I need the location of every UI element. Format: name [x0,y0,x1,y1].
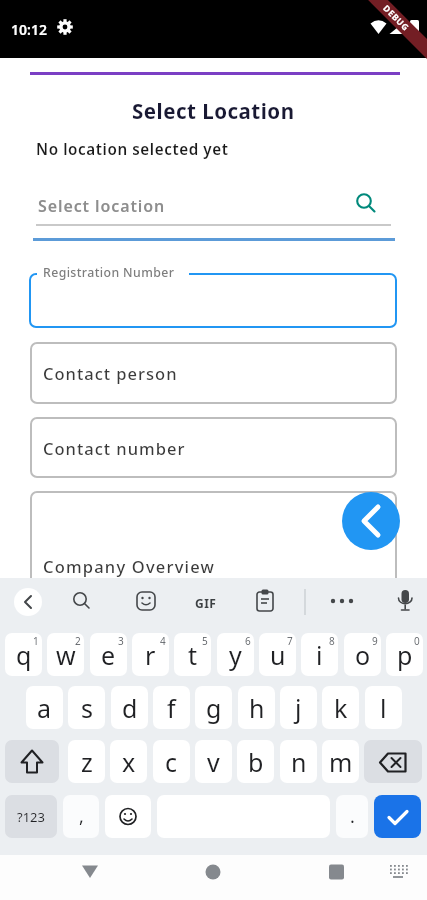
button[interactable] [259,633,296,676]
button[interactable] [132,633,169,676]
button[interactable] [90,633,127,676]
button[interactable] [47,633,84,676]
staticText: v [207,745,220,779]
button[interactable] [5,740,59,783]
button[interactable] [301,633,338,676]
staticText: x [122,745,136,779]
button[interactable]: j [280,686,317,729]
staticText: c [165,745,178,779]
staticText: u [270,638,286,672]
staticText: Contact number [43,437,186,459]
button[interactable]: Company Overview [30,491,397,641]
staticText: Select Location [132,97,295,125]
button[interactable] [217,633,254,676]
staticText: 9 [372,634,378,648]
button[interactable] [386,633,423,676]
staticText: GIF [195,595,217,611]
button[interactable] [342,492,400,550]
button[interactable]: m [322,740,359,783]
staticText: m [329,745,353,779]
staticText: y [229,638,242,672]
staticText: 5 [202,634,208,648]
staticText: Registration Number [43,264,175,281]
staticText: r [145,638,156,672]
staticText: e [101,638,116,672]
staticText: 0 [414,634,420,648]
staticText: , [79,804,84,829]
button[interactable]: , [63,795,99,838]
staticText: h [249,691,265,725]
button[interactable]: x [110,740,147,783]
staticText: b [248,745,264,779]
button[interactable] [364,740,422,783]
button[interactable] [105,795,151,838]
button[interactable]: Contact person [30,342,397,404]
staticText: 10:12 [11,20,47,39]
button[interactable]: c [153,740,190,783]
staticText: 4 [160,634,166,648]
button[interactable] [317,856,357,888]
button[interactable]: b [237,740,274,783]
button[interactable]: Select location [30,188,398,224]
button[interactable] [344,633,381,676]
staticText: d [122,691,138,725]
button[interactable]: Contact number [30,417,397,478]
staticText: l [380,691,387,725]
button[interactable] [374,795,421,838]
staticText: Select location [38,195,166,217]
staticText: f [167,691,176,725]
staticText: 2 [75,634,81,648]
button[interactable]: g [195,686,232,729]
staticText: w [56,638,76,672]
button[interactable]: z [68,740,105,783]
staticText: i [316,638,323,672]
button[interactable] [5,633,42,676]
staticText: z [81,745,93,779]
staticText: 6 [245,634,251,648]
button[interactable]: l [365,686,402,729]
staticText: . [350,804,355,829]
staticText: Contact person [43,362,178,384]
button[interactable]: ?123 [5,795,57,838]
button[interactable] [29,273,397,328]
staticText: n [291,745,307,779]
staticText: o [355,638,371,672]
button[interactable]: s [68,686,105,729]
staticText: t [188,638,198,672]
staticText: p [397,638,413,672]
staticText: DEBUG [380,2,412,34]
button[interactable]: n [280,740,317,783]
staticText: 7 [287,634,293,648]
staticText: 3 [118,634,124,648]
staticText: Company Overview [43,555,216,577]
button[interactable] [193,856,233,888]
button[interactable] [70,856,110,888]
staticText: ?123 [17,808,45,826]
staticText: 8 [329,634,335,648]
button[interactable] [14,588,42,616]
staticText: 1 [33,634,39,648]
staticText: g [206,691,222,725]
staticText: No location selected yet [36,139,229,160]
button[interactable]: v [195,740,232,783]
button[interactable] [174,633,211,676]
button[interactable]: k [322,686,359,729]
button[interactable]: a [26,686,63,729]
button[interactable]: . [336,795,368,838]
staticText: j [295,691,302,725]
button[interactable]: h [238,686,275,729]
staticText: a [37,691,52,725]
button[interactable]: f [153,686,190,729]
staticText: k [334,691,348,725]
staticText: s [81,691,93,725]
staticText: q [16,638,32,672]
button[interactable]: d [111,686,148,729]
